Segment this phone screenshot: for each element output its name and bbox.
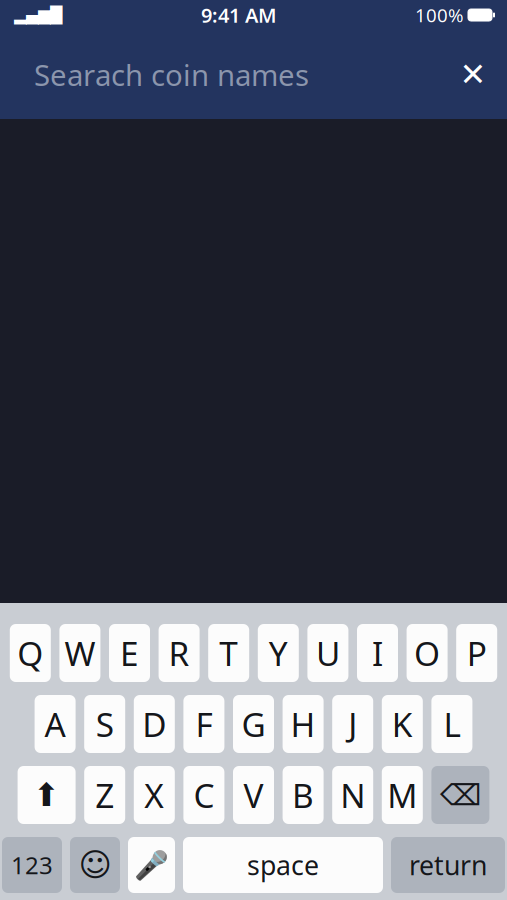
- staticText: ▂▄▆█: [14, 6, 62, 24]
- staticText: U: [316, 631, 340, 675]
- button[interactable]: G: [233, 695, 274, 753]
- button[interactable]: H: [283, 695, 324, 753]
- staticText: O: [414, 631, 440, 675]
- staticText: T: [219, 631, 238, 675]
- staticText: J: [348, 702, 357, 746]
- button[interactable]: Z: [84, 766, 125, 824]
- staticText: D: [142, 702, 166, 746]
- staticText: X: [144, 773, 164, 817]
- button[interactable]: Y: [258, 624, 299, 682]
- staticText: F: [195, 702, 212, 746]
- staticText: Q: [17, 631, 43, 675]
- button[interactable]: O: [407, 624, 448, 682]
- button[interactable]: D: [134, 695, 175, 753]
- staticText: G: [241, 702, 265, 746]
- staticText: Y: [269, 631, 288, 675]
- button[interactable]: B: [283, 766, 324, 824]
- staticText: ☺: [78, 847, 111, 883]
- staticText: P: [467, 631, 487, 675]
- button[interactable]: W: [59, 624, 100, 682]
- button[interactable]: A: [35, 695, 76, 753]
- staticText: space: [247, 847, 319, 883]
- staticText: B: [292, 773, 314, 817]
- staticText: 🎤: [134, 849, 169, 881]
- staticText: V: [243, 773, 263, 817]
- button[interactable]: R: [159, 624, 200, 682]
- button[interactable]: M: [382, 766, 423, 824]
- staticText: Searach coin names: [34, 55, 309, 94]
- staticText: 123: [11, 849, 53, 881]
- staticText: R: [169, 631, 190, 675]
- button[interactable]: Numbers: [2, 837, 62, 893]
- staticText: ⌫: [440, 778, 481, 812]
- button[interactable]: F: [183, 695, 224, 753]
- button[interactable]: X: [134, 766, 175, 824]
- staticText: W: [64, 631, 95, 675]
- staticText: C: [193, 773, 214, 817]
- button[interactable]: Shift: [18, 766, 76, 824]
- button[interactable]: V: [233, 766, 274, 824]
- button[interactable]: E: [109, 624, 150, 682]
- staticText: I: [372, 631, 383, 675]
- button[interactable]: C: [183, 766, 224, 824]
- button[interactable]: return: [391, 837, 505, 893]
- button[interactable]: K: [382, 695, 423, 753]
- staticText: return: [409, 847, 487, 883]
- staticText: E: [120, 631, 139, 675]
- button[interactable]: P: [456, 624, 497, 682]
- staticText: M: [387, 773, 417, 817]
- staticText: Z: [95, 773, 114, 817]
- button[interactable]: Clear search: [451, 52, 495, 96]
- staticText: ✕: [459, 56, 486, 93]
- button[interactable]: Delete: [431, 766, 489, 824]
- button[interactable]: T: [208, 624, 249, 682]
- staticText: H: [291, 702, 316, 746]
- button[interactable]: J: [332, 695, 373, 753]
- staticText: 100%: [415, 3, 464, 27]
- staticText: 9:41 AM: [201, 2, 277, 28]
- button[interactable]: space: [183, 837, 383, 893]
- button[interactable]: S: [84, 695, 125, 753]
- staticText: N: [340, 773, 365, 817]
- staticText: S: [96, 702, 114, 746]
- staticText: L: [443, 702, 460, 746]
- staticText: K: [392, 702, 413, 746]
- button[interactable]: N: [332, 766, 373, 824]
- button[interactable]: U: [307, 624, 348, 682]
- button[interactable]: I: [357, 624, 398, 682]
- button[interactable]: L: [431, 695, 472, 753]
- staticText: A: [45, 702, 66, 746]
- button[interactable]: Emoji: [70, 837, 120, 893]
- button[interactable]: Dictate: [128, 837, 175, 893]
- staticText: ⬆: [33, 777, 60, 813]
- button[interactable]: Q: [10, 624, 51, 682]
